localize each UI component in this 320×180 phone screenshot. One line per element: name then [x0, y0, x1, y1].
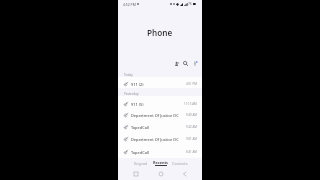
- button[interactable]: 911 (2): [118, 78, 202, 90]
- staticText: 9:22 AM: [186, 125, 197, 129]
- button[interactable]: TapedCall: [118, 121, 202, 133]
- button[interactable]: Back: [180, 169, 189, 178]
- staticText: 9:49 AM: [186, 113, 197, 117]
- button[interactable]: Keypad: [131, 157, 151, 169]
- button[interactable]: Department Of Justice DC: [118, 133, 202, 145]
- staticText: 911 (2): [131, 82, 144, 87]
- staticText: 4:52 PM: [123, 2, 136, 7]
- staticText: Phone: [147, 27, 173, 38]
- staticText: Yesterday: [124, 92, 139, 96]
- staticText: Keypad: [134, 161, 148, 166]
- button[interactable]: Search: [181, 59, 190, 68]
- staticText: TapedCall: [131, 125, 149, 130]
- staticText: Department Of Justice DC: [131, 113, 179, 118]
- staticText: TapedCall: [131, 150, 149, 155]
- button[interactable]: Recent apps: [131, 169, 140, 178]
- staticText: 4:51 PM: [186, 82, 197, 86]
- button[interactable]: TapedCall: [118, 146, 202, 158]
- button[interactable]: Department Of Justice DC: [118, 109, 202, 121]
- button[interactable]: More options: [190, 59, 199, 68]
- staticText: Contacts: [172, 161, 188, 166]
- staticText: Today: [124, 73, 133, 77]
- button[interactable]: Add contact: [172, 59, 181, 68]
- staticText: Department Of Justice DC: [131, 137, 179, 142]
- staticText: 9:01 AM: [186, 137, 197, 141]
- staticText: 76: [188, 2, 192, 6]
- button[interactable]: Recents: [151, 157, 170, 169]
- staticText: Recents: [153, 160, 169, 165]
- button[interactable]: Contacts: [170, 157, 189, 169]
- button[interactable]: Home: [156, 169, 165, 178]
- staticText: 911 (5): [131, 102, 144, 107]
- button[interactable]: 911 (5): [118, 98, 202, 110]
- staticText: 11:13 AM: [184, 102, 197, 106]
- staticText: 8:41 AM: [186, 150, 197, 154]
